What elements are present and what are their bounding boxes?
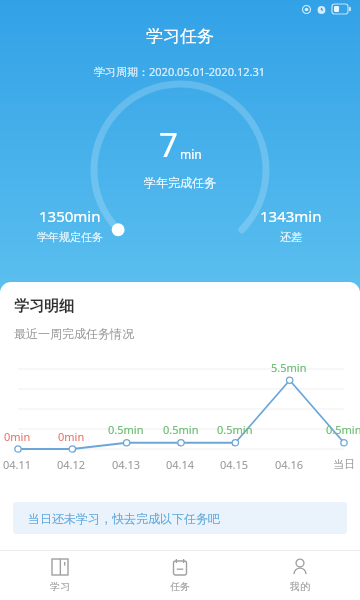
staticText: 0.5min xyxy=(326,422,360,437)
staticText: 0min xyxy=(4,429,31,444)
staticText: 0.5min xyxy=(163,422,199,437)
staticText: 04.11 xyxy=(3,457,32,472)
staticText: 7 xyxy=(159,122,178,167)
staticText: 还差 xyxy=(280,230,302,244)
staticText: 学习明细 xyxy=(14,297,74,316)
staticText: 1343min xyxy=(260,206,322,226)
staticText: 04.14 xyxy=(166,457,195,472)
staticText: 学习 xyxy=(50,580,70,593)
staticText: 04.16 xyxy=(275,457,304,472)
staticText: 0.5min xyxy=(108,422,144,437)
other: Study xyxy=(51,558,69,576)
staticText: 任务 xyxy=(170,580,190,593)
button[interactable]: Profile xyxy=(240,551,360,600)
staticText: 学习任务 xyxy=(146,26,214,47)
other: Tasks xyxy=(171,558,189,576)
other: Profile xyxy=(291,558,309,576)
staticText: 当日 xyxy=(333,457,355,471)
staticText: 5.5min xyxy=(271,360,307,375)
button[interactable]: 当日还未学习，快去完成以下任务吧 xyxy=(13,502,347,534)
staticText: 0min xyxy=(58,429,85,444)
staticText: 我的 xyxy=(290,580,310,593)
button[interactable]: Study xyxy=(0,551,120,600)
staticText: 最近一周完成任务情况 xyxy=(14,326,134,341)
staticText: 学习周期：2020.05.01-2020.12.31 xyxy=(94,64,266,79)
button[interactable]: Tasks xyxy=(120,551,240,600)
staticText: 1350min xyxy=(39,206,101,226)
staticText: 学年规定任务 xyxy=(37,230,103,244)
staticText: 04.15 xyxy=(220,457,249,472)
staticText: 04.13 xyxy=(112,457,141,472)
staticText: 0.5min xyxy=(217,422,253,437)
staticText: 当日还未学习，快去完成以下任务吧 xyxy=(28,511,220,526)
staticText: min xyxy=(180,146,202,162)
staticText: 学年完成任务 xyxy=(144,175,216,190)
staticText: 04.12 xyxy=(57,457,86,472)
